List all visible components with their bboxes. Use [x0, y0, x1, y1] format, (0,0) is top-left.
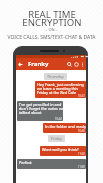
- button[interactable]: Thursday: [44, 73, 67, 80]
- button[interactable]: Back: [17, 61, 24, 68]
- button[interactable]: Perfect: [17, 159, 86, 169]
- staticText: Friday: [51, 136, 62, 141]
- staticText: I've got pencilled in and don't forget t…: [19, 102, 63, 115]
- staticText: Want well you think?: [42, 147, 79, 152]
- button[interactable]: Want well you think?: [40, 146, 86, 156]
- staticText: 10:46: [78, 129, 85, 133]
- button[interactable]: I've got pencilled in and don't forget t…: [17, 101, 63, 121]
- button[interactable]: Friday: [48, 135, 65, 142]
- staticText: Franky: [28, 60, 49, 68]
- button[interactable]: More options: [80, 62, 85, 67]
- button[interactable]: Call: [73, 61, 80, 68]
- staticText: 10:41: [78, 94, 85, 98]
- staticText: Perfect: [19, 160, 32, 165]
- button[interactable]: Back: [16, 58, 86, 70]
- staticText: 10:44: [55, 117, 62, 121]
- button[interactable]: Hey Frank, just confirming we have a mee…: [35, 81, 86, 98]
- staticText: Thursday: [47, 74, 64, 79]
- staticText: – ON –: [45, 27, 58, 32]
- staticText: 11:05: [78, 165, 85, 169]
- staticText: Hey Frank, just confirming we have a mee…: [37, 82, 84, 95]
- staticText: In the folder and ready: [45, 124, 86, 129]
- staticText: ENCRYPTION: [22, 16, 82, 29]
- staticText: VOICE CALLS, SMS/TEXT-CHAT & DATA: [7, 34, 96, 41]
- staticText: REAL TIME: [28, 8, 76, 21]
- button[interactable]: Search: [66, 61, 73, 68]
- staticText: 11:02: [78, 152, 85, 156]
- button[interactable]: In the folder and ready: [43, 123, 86, 133]
